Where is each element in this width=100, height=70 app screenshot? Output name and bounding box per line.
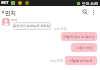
button[interactable]: Profile photo — [2, 18, 10, 26]
button[interactable]: 어떻게 생긴 것 같아요 — [61, 32, 97, 41]
staticText: 오전 4:35 — [82, 1, 99, 6]
button[interactable]: 어떻굴 생기는군 — [65, 56, 97, 65]
staticText: 문자까지 보냈는데 연락없어 — [13, 24, 51, 28]
staticText: 오전 4:16 — [50, 59, 63, 63]
button[interactable]: 그런가 봐요 — [71, 43, 97, 52]
staticText: 어떻굴 생기는군 — [69, 59, 93, 63]
staticText: 그런가 봐요 — [76, 46, 93, 50]
staticText: 민지 — [5, 10, 16, 17]
staticText: 민지 — [11, 18, 18, 22]
staticText: 어떻게 생긴 것 같아요 — [63, 35, 95, 39]
staticText: SKT — [1, 0, 9, 6]
button[interactable]: 문자까지 보냈는데 연락없어 — [13, 22, 51, 30]
button[interactable]: Back — [0, 6, 5, 18]
staticText: 오전 4:12 — [54, 27, 67, 31]
button[interactable]: More options — [89, 6, 97, 18]
button[interactable]: Search — [80, 6, 89, 18]
